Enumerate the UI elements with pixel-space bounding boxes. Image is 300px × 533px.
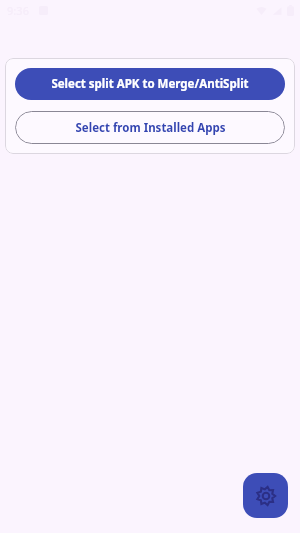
button[interactable]: Select from Installed Apps [15, 111, 285, 144]
staticText: Select from Installed Apps [75, 120, 226, 136]
staticText: Select split APK to Merge/AntiSplit [51, 76, 249, 92]
button[interactable]: Select split APK to Merge/AntiSplit [15, 68, 285, 100]
button[interactable]: Settings [243, 473, 288, 518]
